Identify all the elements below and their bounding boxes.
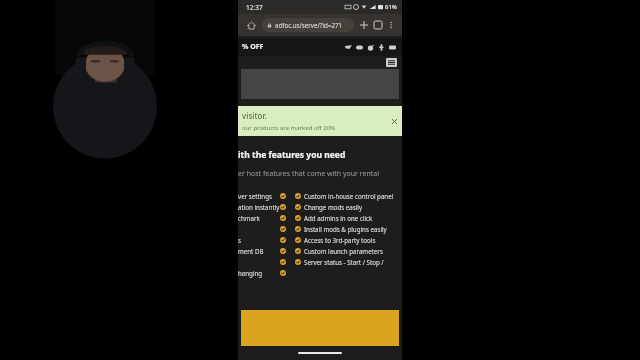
button[interactable]: chmark bbox=[238, 212, 288, 223]
staticText: Add admins in one click bbox=[304, 214, 373, 222]
button[interactable]: Menu bbox=[386, 58, 397, 67]
button[interactable]: Twitter bbox=[343, 42, 354, 53]
staticText: our products are marked off 20% bbox=[242, 124, 336, 132]
button[interactable]: Change mods easily bbox=[295, 201, 402, 212]
staticText: chmark bbox=[238, 214, 260, 222]
button[interactable]: ment DB bbox=[238, 245, 288, 256]
button[interactable]: s bbox=[238, 234, 288, 245]
staticText: Install mods & plugins easily bbox=[304, 225, 387, 233]
button[interactable]: YouTube bbox=[387, 42, 398, 53]
button[interactable]: More options bbox=[385, 19, 397, 31]
staticText: Custom in-house control panel bbox=[304, 192, 394, 200]
staticText: ith the features you need bbox=[238, 149, 346, 161]
staticText: ment DB bbox=[238, 247, 264, 255]
button[interactable]: Custom in-house control panel bbox=[295, 190, 402, 201]
staticText: Change mods easily bbox=[304, 203, 363, 211]
staticText: 12:37 bbox=[246, 3, 263, 12]
button[interactable]: Close bbox=[390, 117, 398, 125]
button[interactable]: hanging bbox=[238, 267, 288, 278]
button[interactable]: adfoc.us/serve/?id=271 bbox=[262, 18, 354, 32]
button[interactable]: Home bbox=[243, 17, 259, 33]
staticText: visitor. bbox=[242, 110, 267, 121]
button[interactable]: ation instantly bbox=[238, 201, 288, 212]
button[interactable]: Access to 3rd-party tools bbox=[295, 234, 402, 245]
staticText: ation instantly bbox=[238, 203, 280, 211]
staticText: % OFF bbox=[242, 42, 264, 52]
staticText: er host features that come with your ren… bbox=[238, 169, 380, 179]
staticText: 61% bbox=[385, 3, 397, 11]
button[interactable]: Add admins in one click bbox=[295, 212, 402, 223]
button[interactable]: Facebook bbox=[376, 42, 387, 53]
staticText: Server status - Start / Stop / Restart bbox=[304, 258, 402, 266]
staticText: adfoc.us/serve/?id=271 bbox=[275, 21, 343, 29]
staticText: ver settings bbox=[238, 192, 272, 200]
button[interactable]: Server status - Start / Stop / Restart bbox=[295, 256, 402, 267]
button[interactable]: Reddit bbox=[365, 42, 376, 53]
button[interactable]: Discord bbox=[354, 42, 365, 53]
button[interactable]: ver settings bbox=[238, 190, 288, 201]
staticText: Custom launch parameters bbox=[304, 247, 383, 255]
staticText: Access to 3rd-party tools bbox=[304, 236, 376, 244]
button[interactable]: Custom launch parameters bbox=[295, 245, 402, 256]
button[interactable]: Tabs bbox=[371, 18, 385, 32]
button[interactable]: Install mods & plugins easily bbox=[295, 223, 402, 234]
staticText: s bbox=[238, 236, 241, 244]
button[interactable] bbox=[238, 223, 288, 234]
button[interactable]: New tab bbox=[357, 18, 371, 32]
staticText: hanging bbox=[238, 269, 263, 277]
button[interactable] bbox=[238, 256, 288, 267]
